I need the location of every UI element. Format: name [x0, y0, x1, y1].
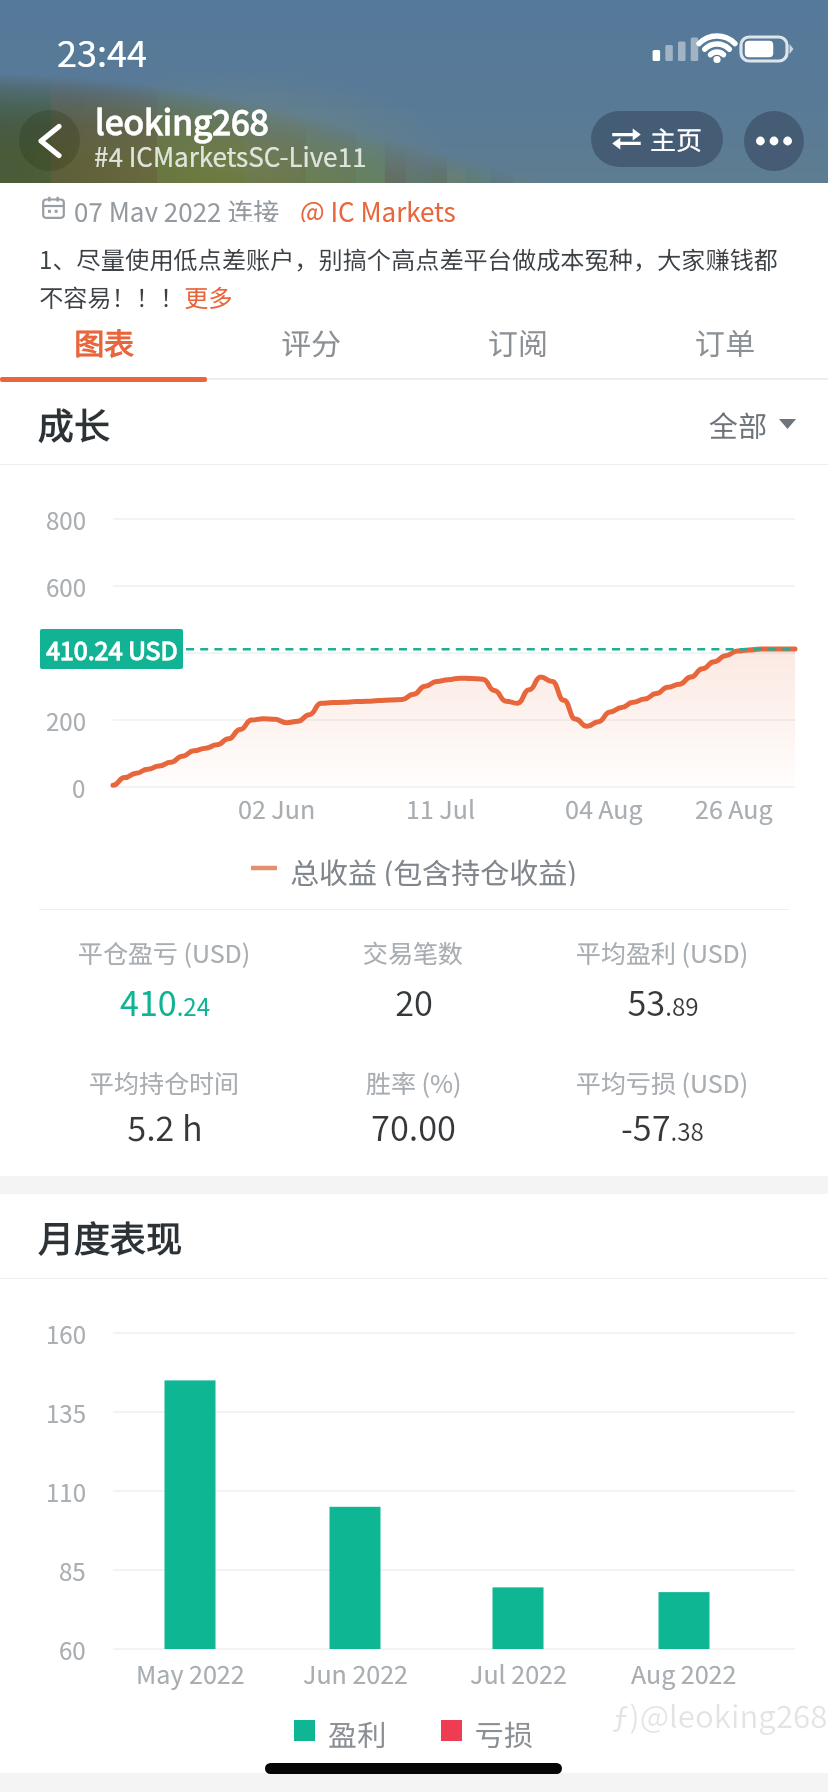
staticText: 1、尽量使用低点差账户，别搞个高点差平台做成本冤种，大家赚钱都不容易！！！更多	[39, 241, 789, 314]
staticText: 11 Jul	[406, 790, 476, 826]
staticText: May 2022	[136, 1655, 245, 1691]
staticText: 5.2 h	[127, 1102, 203, 1150]
staticText: 平均盈利 (USD)	[576, 934, 749, 970]
staticText: 600	[46, 569, 86, 604]
staticText: 平均亏损 (USD)	[576, 1064, 749, 1100]
button[interactable]: 图表	[0, 305, 207, 377]
staticText: 04 Aug	[565, 790, 643, 826]
button[interactable]: 订单	[621, 305, 828, 377]
staticText: 200	[46, 703, 86, 738]
staticText: 平均持仓时间	[89, 1064, 240, 1100]
staticText: 410.24 USD	[46, 631, 178, 667]
staticText: Aug 2022	[631, 1655, 737, 1691]
staticText: leoking268	[95, 96, 269, 145]
staticText: 07 May 2022 连接	[74, 192, 280, 222]
staticText: 800	[46, 502, 86, 537]
staticText: 全部	[709, 403, 768, 445]
staticText: 盈利	[328, 1712, 387, 1748]
button[interactable]: More options	[744, 111, 804, 171]
staticText: -57.38	[621, 1102, 704, 1150]
staticText: 02 Jun	[238, 790, 316, 826]
button[interactable]: 评分	[207, 305, 414, 377]
button[interactable]: 主页	[591, 111, 723, 167]
button[interactable]: 全部	[709, 403, 796, 445]
staticText: Jun 2022	[303, 1655, 408, 1691]
staticText: 交易笔数	[363, 934, 464, 970]
staticText: 订单	[695, 320, 755, 363]
staticText: 23:44	[57, 25, 147, 77]
staticText: 总收益 (包含持仓收益)	[290, 850, 578, 886]
staticText: 胜率 (%)	[366, 1064, 462, 1100]
staticText: 85	[59, 1553, 86, 1588]
staticText: 160	[46, 1316, 86, 1351]
staticText: 订阅	[488, 320, 548, 363]
staticText: 110	[46, 1474, 86, 1509]
button[interactable]: 订阅	[414, 305, 621, 377]
staticText: 0	[72, 770, 86, 805]
staticText: 成长	[38, 397, 111, 449]
staticText: 70.00	[371, 1102, 456, 1150]
staticText: 20	[395, 977, 433, 1025]
staticText: 26 Aug	[695, 790, 773, 826]
staticText: 评分	[281, 320, 341, 363]
staticText: #4 ICMarketsSC-Live11	[94, 137, 367, 175]
staticText: @ IC Markets	[300, 192, 456, 222]
staticText: 平仓盈亏 (USD)	[78, 934, 251, 970]
staticText: 135	[46, 1395, 86, 1430]
staticText: 410.24	[120, 977, 210, 1025]
button[interactable]: Back	[19, 110, 80, 171]
staticText: 主页	[650, 120, 703, 158]
staticText: 图表	[74, 320, 134, 363]
staticText: 60	[59, 1632, 86, 1667]
staticText: 亏损	[475, 1712, 534, 1748]
staticText: ƒ)@leoking268	[612, 1692, 828, 1737]
staticText: 53.89	[627, 977, 699, 1025]
staticText: Jul 2022	[470, 1655, 567, 1691]
staticText: 月度表现	[38, 1210, 183, 1262]
